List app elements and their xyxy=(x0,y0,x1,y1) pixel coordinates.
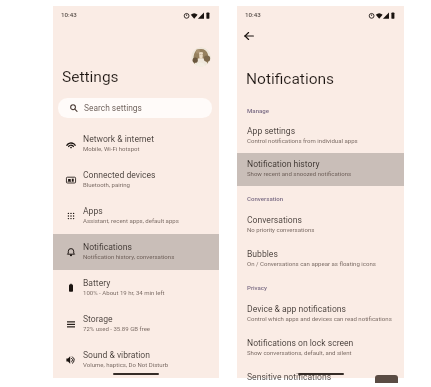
staticText: Conversation xyxy=(247,195,284,202)
staticText: Show recent and snoozed notifications xyxy=(247,170,352,177)
staticText: Sensitive notifications xyxy=(247,372,332,382)
staticText: 100% - About 19 hr, 34 min left xyxy=(83,289,165,296)
staticText: Show conversations, default, and silent xyxy=(247,349,352,356)
button[interactable]: Storage xyxy=(53,306,219,342)
staticText: Search settings xyxy=(84,103,142,113)
staticText: Device & app notifications xyxy=(247,304,346,314)
button[interactable]: Battery xyxy=(53,270,219,306)
button[interactable]: Bubbles xyxy=(237,243,404,276)
staticText: App settings xyxy=(247,126,296,136)
staticText: On / Conversations can appear as floatin… xyxy=(247,260,376,267)
staticText: Connected devices xyxy=(83,170,156,180)
staticText: No priority conversations xyxy=(247,226,315,233)
staticText: Apps xyxy=(83,206,103,216)
staticText: Conversations xyxy=(247,215,302,225)
staticText: Bluetooth, pairing xyxy=(83,181,131,188)
staticText: Control which apps and devices can read … xyxy=(247,315,392,322)
button[interactable]: Device & app notifications xyxy=(237,298,404,331)
staticText: Network & internet xyxy=(83,134,154,144)
staticText: 10:43 xyxy=(61,11,77,18)
button[interactable]: Apps xyxy=(53,198,219,234)
button[interactable]: Notifications on lock screen xyxy=(237,332,404,365)
staticText: 72% used - 35.89 GB free xyxy=(83,325,151,332)
staticText: Notifications on lock screen xyxy=(247,338,354,348)
staticText: Sound & vibration xyxy=(83,350,150,360)
staticText: Assistant, recent apps, default apps xyxy=(83,217,179,224)
staticText: Notifications xyxy=(246,70,335,88)
staticText: Battery xyxy=(83,278,111,288)
staticText: Notification history xyxy=(247,159,320,169)
button[interactable]: App settings xyxy=(237,120,404,153)
button[interactable]: Conversations xyxy=(237,209,404,242)
staticText: Settings xyxy=(62,68,119,86)
staticText: Control notifications from individual ap… xyxy=(247,137,358,144)
staticText: Storage xyxy=(83,314,113,324)
button[interactable]: Account xyxy=(191,47,211,67)
staticText: Manage xyxy=(247,107,270,114)
staticText: Bubbles xyxy=(247,249,278,259)
staticText: Notifications xyxy=(83,242,132,252)
button[interactable]: Connected devices xyxy=(53,162,219,198)
button[interactable]: Network & internet xyxy=(53,126,219,162)
button[interactable]: Sound & vibration xyxy=(53,342,219,378)
button[interactable]: Back xyxy=(240,27,258,45)
staticText: Privacy xyxy=(247,284,268,291)
button[interactable]: Notifications xyxy=(53,234,219,270)
staticText: Volume, haptics, Do Not Disturb xyxy=(83,361,169,368)
staticText: Notification history, conversations xyxy=(83,253,175,260)
staticText: Mobile, Wi-Fi hotspot xyxy=(83,145,140,152)
button[interactable]: Sensitive notifications xyxy=(237,366,404,387)
button[interactable]: Search settings xyxy=(58,98,212,118)
button[interactable]: Notification history xyxy=(237,153,404,186)
staticText: 10:43 xyxy=(245,11,261,18)
